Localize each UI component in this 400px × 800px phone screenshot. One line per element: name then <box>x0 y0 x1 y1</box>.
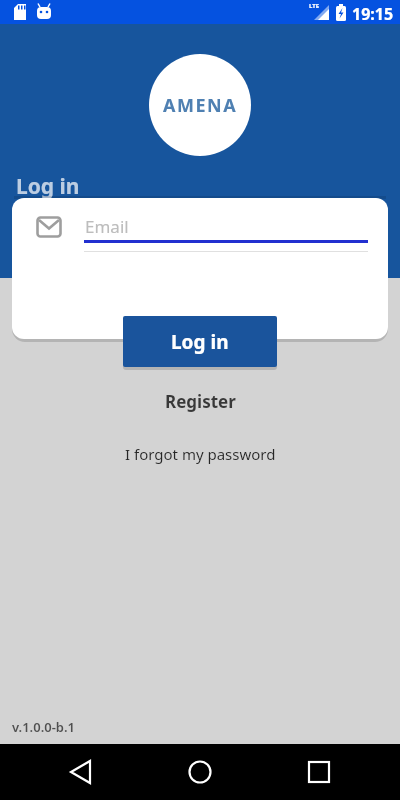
button[interactable]: I forgot my password <box>125 444 276 464</box>
button[interactable] <box>267 744 400 800</box>
staticText: AMENA <box>163 93 238 118</box>
button[interactable] <box>0 744 134 800</box>
button[interactable]: Log in <box>123 316 277 367</box>
staticText: Email <box>85 215 129 238</box>
button[interactable] <box>134 744 267 800</box>
staticText: v.1.0.0-b.1 <box>12 718 75 736</box>
staticText: LTE <box>309 2 320 10</box>
staticText: 19:15 <box>352 3 394 25</box>
button[interactable]: Register <box>165 390 236 413</box>
staticText: Log in <box>16 172 80 201</box>
button[interactable] <box>12 198 388 258</box>
staticText: Log in <box>171 329 229 355</box>
